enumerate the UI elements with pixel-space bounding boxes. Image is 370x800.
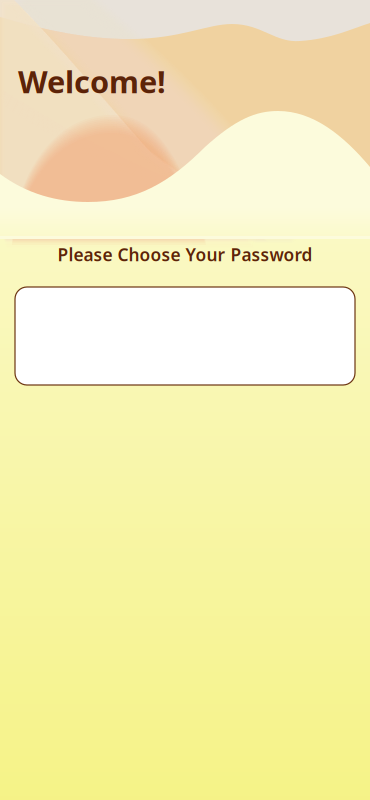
staticText: Welcome! bbox=[18, 61, 166, 102]
staticText: Please Choose Your Password bbox=[57, 243, 312, 266]
button[interactable]: Password field bbox=[15, 287, 355, 385]
